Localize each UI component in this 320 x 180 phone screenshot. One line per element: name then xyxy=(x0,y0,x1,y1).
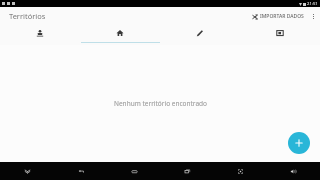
button[interactable]: Recentes xyxy=(161,162,214,180)
button[interactable]: Pessoas xyxy=(0,24,80,45)
staticText: 21:51 xyxy=(307,1,318,7)
staticText: IMPORTAR DADOS xyxy=(260,13,304,20)
button[interactable]: Início xyxy=(108,162,161,180)
staticText: Nenhum território encontrado xyxy=(114,99,207,108)
button[interactable]: Esconder teclado xyxy=(0,162,54,180)
staticText: Territórios xyxy=(9,11,46,21)
button[interactable]: Mensagens xyxy=(240,24,320,45)
button[interactable]: Adicionar território xyxy=(288,132,310,154)
button[interactable]: Editar xyxy=(160,24,240,45)
button[interactable]: Início xyxy=(80,24,160,45)
button[interactable]: Voltar xyxy=(54,162,108,180)
button[interactable]: Mais opções xyxy=(306,9,320,23)
button[interactable]: IMPORTAR DADOS xyxy=(250,10,306,23)
button[interactable]: Volume xyxy=(267,162,320,180)
button[interactable]: Captura de tela xyxy=(214,162,267,180)
